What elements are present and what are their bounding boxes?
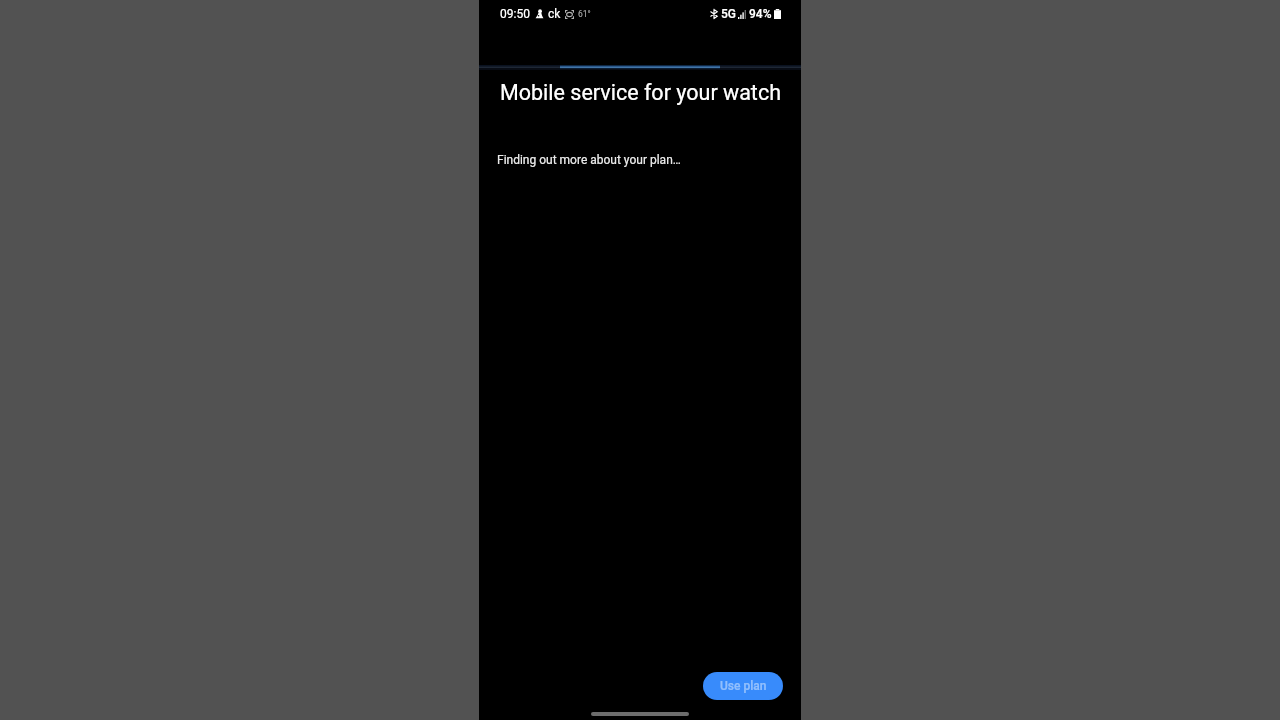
staticText: ck — [548, 7, 561, 21]
other: Do not disturb — [535, 9, 544, 19]
staticText: 94% — [749, 7, 772, 21]
staticText: 5G — [721, 7, 736, 21]
button[interactable]: Use plan — [703, 672, 783, 700]
staticText: Mobile service for your watch — [500, 80, 781, 105]
staticText: 09:50 — [500, 7, 530, 21]
other: Bluetooth — [710, 9, 718, 19]
staticText: 61° — [578, 9, 591, 19]
other: Screen recording — [565, 10, 574, 19]
other: Mobile signal — [738, 10, 746, 19]
staticText: Use plan — [720, 679, 767, 693]
staticText: Finding out more about your plan… — [497, 153, 681, 167]
other: Battery 94 percent — [774, 9, 781, 19]
